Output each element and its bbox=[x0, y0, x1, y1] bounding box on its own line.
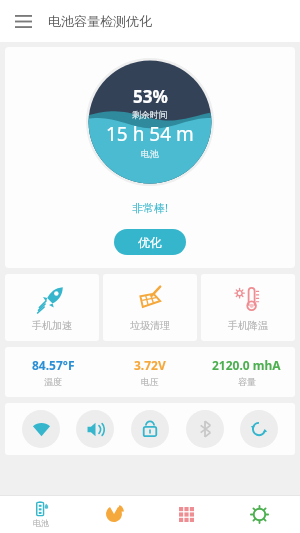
button[interactable]: 84.57°F bbox=[5, 357, 101, 387]
staticText: 15 h 54 m bbox=[106, 121, 194, 147]
staticText: 手机降温 bbox=[228, 319, 268, 332]
staticText: 3.72V bbox=[134, 357, 166, 373]
staticText: 非常棒! bbox=[132, 200, 168, 215]
button[interactable]: 优化 bbox=[114, 229, 186, 255]
button[interactable]: 2120.0 mhA bbox=[198, 357, 295, 387]
staticText: 手机加速 bbox=[32, 319, 72, 332]
staticText: 容量 bbox=[238, 376, 256, 387]
button[interactable]: 3.72V bbox=[101, 357, 198, 387]
button[interactable]: Sync bbox=[240, 410, 278, 448]
button[interactable]: Lock bbox=[131, 410, 169, 448]
button[interactable]: 手机降温 bbox=[201, 274, 295, 341]
staticText: 优化 bbox=[138, 235, 162, 250]
staticText: 53% bbox=[133, 85, 168, 108]
staticText: 温度 bbox=[44, 376, 62, 387]
staticText: 84.57°F bbox=[32, 357, 75, 373]
staticText: 电池 bbox=[141, 148, 159, 159]
button[interactable]: Apps bbox=[154, 495, 218, 533]
staticText: 垃圾清理 bbox=[130, 319, 170, 332]
staticText: 电池容量检测优化 bbox=[48, 13, 152, 29]
button[interactable]: Statistics bbox=[82, 495, 146, 533]
button[interactable]: Menu bbox=[8, 6, 38, 36]
button[interactable]: 手机加速 bbox=[5, 274, 99, 341]
staticText: 2120.0 mhA bbox=[212, 357, 281, 373]
staticText: 电池 bbox=[33, 518, 49, 528]
button[interactable]: Wi-Fi bbox=[22, 410, 60, 448]
button[interactable]: Settings bbox=[227, 495, 291, 533]
button[interactable]: 垃圾清理 bbox=[103, 274, 197, 341]
staticText: 剩余时间 bbox=[132, 109, 168, 120]
button[interactable]: Bluetooth bbox=[186, 410, 224, 448]
button[interactable]: Volume bbox=[76, 410, 114, 448]
button[interactable]: Battery bbox=[9, 495, 73, 533]
staticText: 电压 bbox=[141, 376, 159, 387]
